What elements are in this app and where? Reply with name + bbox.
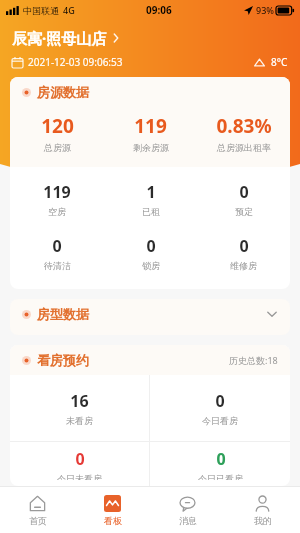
staticText: 16 xyxy=(70,390,89,412)
button[interactable]: 16 xyxy=(66,384,93,432)
staticText: 中国联通 xyxy=(23,5,59,16)
button[interactable]: 120 xyxy=(10,107,104,159)
staticText: 已租 xyxy=(142,206,160,217)
staticText: 119 xyxy=(43,181,71,203)
staticText: 119 xyxy=(134,113,167,139)
button[interactable]: 消息 xyxy=(150,487,225,533)
button[interactable]: 首页 xyxy=(0,487,75,533)
staticText: 看房预约 xyxy=(37,352,89,368)
button[interactable]: 房型数据 xyxy=(10,299,290,335)
staticText: 维修房 xyxy=(230,260,257,271)
button[interactable]: 0 xyxy=(197,229,290,277)
staticText: 待清洁 xyxy=(44,260,71,271)
button[interactable]: 0 xyxy=(10,229,104,277)
button[interactable]: 1 xyxy=(104,175,197,223)
button[interactable]: 119 xyxy=(10,175,104,223)
staticText: 0 xyxy=(75,448,85,470)
button[interactable]: 119 xyxy=(104,107,197,159)
staticText: 0 xyxy=(216,448,226,470)
staticText: 0.83% xyxy=(216,113,272,139)
staticText: 首页 xyxy=(29,515,47,526)
staticText: 我的 xyxy=(254,515,272,526)
staticText: 剩余房源 xyxy=(133,142,169,153)
other: 看板 xyxy=(104,495,121,512)
staticText: 0 xyxy=(215,390,225,412)
button[interactable]: 0.83% xyxy=(197,107,290,159)
other: 我的 xyxy=(254,495,271,512)
staticText: 历史总数:18 xyxy=(229,354,278,366)
button[interactable]: 0 xyxy=(202,384,238,432)
staticText: 0 xyxy=(239,181,249,203)
staticText: 120 xyxy=(41,113,74,139)
button[interactable]: 0 xyxy=(198,442,243,486)
staticText: 总房源出租率 xyxy=(217,142,271,153)
staticText: 消息 xyxy=(179,515,197,526)
staticText: 总房源 xyxy=(44,142,71,153)
staticText: 房源数据 xyxy=(37,84,89,100)
staticText: 房型数据 xyxy=(37,306,89,322)
staticText: 0 xyxy=(146,235,156,257)
button[interactable]: 我的 xyxy=(225,487,300,533)
staticText: 93% xyxy=(256,4,274,16)
staticText: 1 xyxy=(146,181,156,203)
button[interactable]: 0 xyxy=(57,442,102,486)
staticText: 未看房 xyxy=(66,415,93,426)
staticText: 辰寓·照母山店 xyxy=(12,28,107,48)
staticText: 今日看房 xyxy=(202,415,238,426)
button[interactable]: 看板 xyxy=(75,487,150,533)
staticText: 空房 xyxy=(48,206,66,217)
button[interactable]: 0 xyxy=(104,229,197,277)
other: 展开 xyxy=(266,308,278,320)
staticText: 8°C xyxy=(271,55,288,69)
staticText: 0 xyxy=(239,235,249,257)
button[interactable]: 辰寓·照母山店 xyxy=(12,26,120,50)
staticText: 锁房 xyxy=(142,260,160,271)
other: 消息 xyxy=(179,495,196,512)
staticText: 看板 xyxy=(104,515,122,526)
staticText: 今日已看房 xyxy=(198,473,243,480)
staticText: 09:06 xyxy=(146,3,172,17)
other: 首页 xyxy=(29,495,46,512)
staticText: 预定 xyxy=(235,206,253,217)
staticText: 今日未看房 xyxy=(57,473,102,480)
button[interactable]: 0 xyxy=(197,175,290,223)
staticText: 0 xyxy=(52,235,62,257)
staticText: 4G xyxy=(63,4,75,16)
staticText: 2021-12-03 09:06:53 xyxy=(28,55,123,69)
